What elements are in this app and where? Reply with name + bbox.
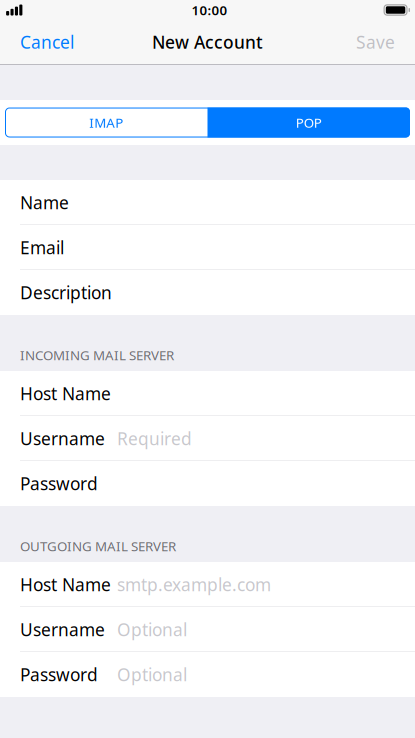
staticText: Password [20, 663, 98, 686]
button[interactable]: IMAP [5, 107, 207, 137]
button[interactable]: Host Name [0, 562, 415, 607]
staticText: Password [20, 472, 98, 495]
staticText: Username [20, 618, 105, 641]
staticText: smtp.example.com [117, 573, 271, 596]
button[interactable]: Name [0, 180, 415, 225]
button[interactable]: Description [0, 270, 415, 315]
button[interactable]: Save [352, 22, 399, 61]
staticText: Required [117, 427, 192, 450]
staticText: Optional [117, 618, 187, 641]
staticText: Description [20, 281, 112, 304]
staticText: IMAP [89, 114, 123, 131]
button[interactable]: Email [0, 225, 415, 270]
button[interactable]: Username [0, 416, 415, 461]
staticText: OUTGOING MAIL SERVER [20, 537, 176, 555]
staticText: Host Name [20, 382, 111, 405]
staticText: Username [20, 427, 105, 450]
button[interactable]: Host Name [0, 371, 415, 416]
staticText: Cancel [20, 30, 74, 53]
button[interactable]: Username [0, 607, 415, 652]
button[interactable]: Cancel [16, 22, 78, 61]
staticText: 10:00 [191, 1, 227, 19]
staticText: POP [296, 114, 322, 131]
button[interactable]: Password [0, 652, 415, 697]
button[interactable]: Password [0, 461, 415, 506]
staticText: Name [20, 191, 69, 214]
staticText: Optional [117, 663, 187, 686]
button[interactable]: POP [207, 107, 410, 137]
staticText: Save [356, 30, 395, 53]
staticText: Host Name [20, 573, 111, 596]
staticText: New Account [152, 30, 263, 53]
staticText: Email [20, 236, 64, 259]
staticText: INCOMING MAIL SERVER [20, 346, 174, 364]
